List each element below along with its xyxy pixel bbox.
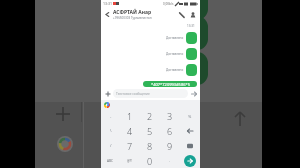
button[interactable] [186, 64, 197, 76]
staticText: 13:31 [187, 24, 195, 28]
staticText: ABC [107, 159, 114, 163]
staticText: 13:31 [103, 1, 112, 6]
button[interactable]: ABC [101, 153, 120, 168]
button[interactable]: 5 [140, 123, 160, 138]
button[interactable]: Tab [180, 123, 200, 138]
staticText: 4 [127, 125, 133, 137]
staticText: Доставлено [166, 36, 184, 40]
button[interactable]: Backspace [180, 138, 200, 153]
staticText: 6 [167, 125, 173, 137]
button[interactable]: % [180, 109, 200, 123]
button[interactable]: Send [189, 89, 198, 98]
button[interactable]: Send [180, 153, 200, 168]
staticText: \ [110, 128, 112, 133]
button[interactable]: Attach [103, 89, 112, 98]
button[interactable]: Contact info [187, 9, 198, 20]
staticText: 2 [147, 110, 153, 122]
button[interactable]: Текстовое сообщение [113, 89, 188, 98]
button[interactable] [186, 48, 197, 60]
button[interactable]: 3 [160, 109, 180, 123]
button[interactable]: / [101, 138, 120, 153]
staticText: 8 [147, 140, 153, 152]
button[interactable]: 1 [120, 109, 140, 123]
staticText: Доставлено [166, 52, 184, 56]
button[interactable]: 2 [140, 109, 160, 123]
button[interactable]: 9 [160, 138, 180, 153]
staticText: Доставлено [166, 68, 184, 72]
button[interactable]: 8 [140, 138, 160, 153]
staticText: % [188, 114, 192, 119]
staticText: Текстовое сообщение [116, 92, 150, 96]
staticText: 0,0Kb/s [163, 2, 174, 6]
staticText: 0 [147, 155, 153, 167]
staticText: +996500303 Туркменистан [113, 16, 152, 20]
button[interactable]: *407*720993#586*5 [143, 81, 197, 87]
staticText: . [169, 158, 171, 163]
staticText: 1 [127, 110, 133, 122]
staticText: 7 [127, 140, 133, 152]
button[interactable]: Back [103, 10, 112, 19]
staticText: 3 [167, 110, 173, 122]
button[interactable]: Call [176, 9, 187, 20]
button[interactable]: 6 [160, 123, 180, 138]
button[interactable] [186, 32, 197, 44]
staticText: *407*720993#586*5 [151, 82, 190, 87]
staticText: 9 [167, 140, 173, 152]
button[interactable]: 0 [140, 153, 160, 168]
button[interactable]: @?! [120, 153, 140, 168]
button[interactable]: 7 [120, 138, 140, 153]
button[interactable]: \ [101, 123, 120, 138]
staticText: АСФРТАЙ Анар [113, 9, 152, 16]
staticText: @?! [127, 159, 133, 163]
staticText: - [110, 114, 112, 119]
button[interactable]: 4 [120, 123, 140, 138]
staticText: 5 [147, 125, 153, 137]
button[interactable]: Google [104, 102, 110, 108]
staticText: / [110, 143, 112, 148]
